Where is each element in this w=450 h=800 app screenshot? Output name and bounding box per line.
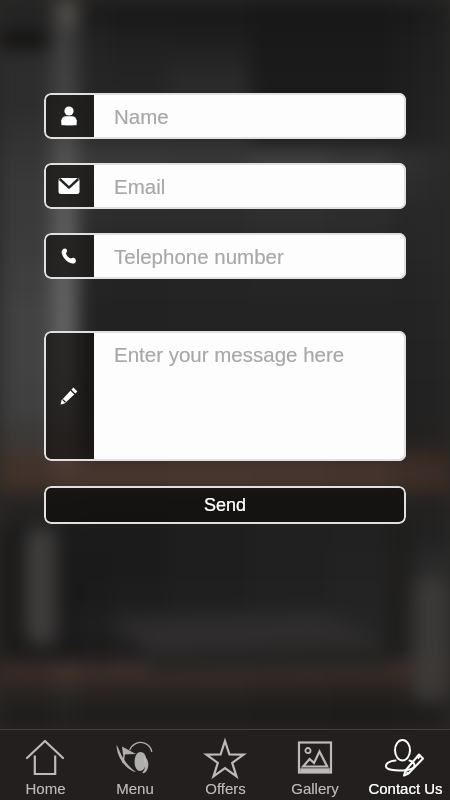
staticText: Gallery	[291, 780, 339, 797]
button[interactable]: Home	[0, 730, 90, 800]
button[interactable]: Menu	[90, 730, 180, 800]
button[interactable]: Contact Us	[360, 730, 450, 800]
button[interactable]: Telephone number	[44, 233, 406, 279]
button[interactable]: Send	[44, 486, 406, 524]
staticText: Email	[114, 175, 166, 198]
button[interactable]: Email	[44, 163, 406, 209]
button[interactable]: Name	[44, 93, 406, 139]
button[interactable]: Offers	[180, 730, 270, 800]
staticText: Telephone number	[114, 245, 284, 268]
staticText: Offers	[205, 780, 246, 797]
staticText: Menu	[116, 780, 154, 797]
staticText: Send	[204, 495, 247, 515]
staticText: Contact Us	[368, 780, 443, 797]
staticText: Enter your message here	[114, 343, 345, 366]
button[interactable]: Enter your message here	[44, 331, 406, 461]
button[interactable]: Gallery	[270, 730, 360, 800]
staticText: Name	[114, 105, 169, 128]
staticText: Home	[25, 780, 66, 797]
